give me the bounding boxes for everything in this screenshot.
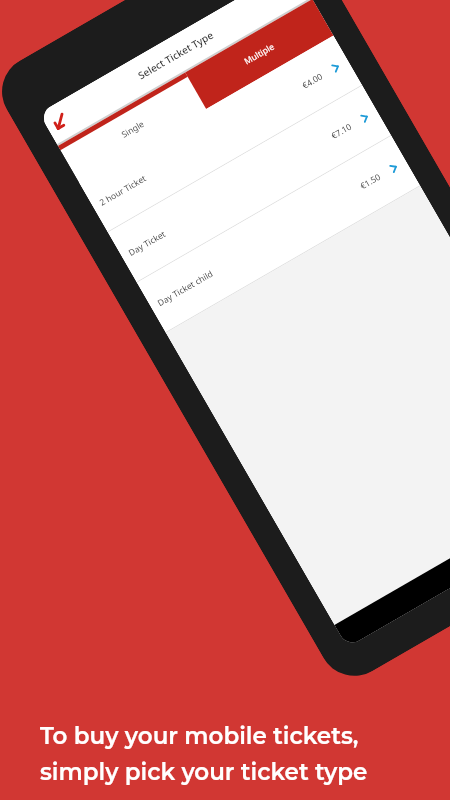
staticText: €4.00 xyxy=(300,70,325,92)
button[interactable]: 2 hour Ticket xyxy=(79,35,362,232)
staticText: €7.10 xyxy=(329,120,354,142)
staticText: Multiple xyxy=(242,40,277,67)
staticText: 2 hour Ticket xyxy=(97,172,148,209)
staticText: Day Ticket child xyxy=(155,267,216,309)
staticText: simply pick your ticket type xyxy=(40,758,368,786)
button[interactable]: Multiple xyxy=(185,0,333,109)
staticText: Day Ticket xyxy=(126,228,168,259)
staticText: Single xyxy=(119,118,147,141)
button[interactable]: Day Ticket xyxy=(108,86,391,282)
button[interactable]: Day Ticket child xyxy=(137,136,420,332)
button[interactable]: Back xyxy=(42,104,78,139)
button[interactable]: Single xyxy=(58,72,206,182)
staticText: To buy your mobile tickets, xyxy=(40,722,359,750)
staticText: €1.50 xyxy=(358,171,383,192)
staticText: Select Ticket Type xyxy=(135,28,216,82)
